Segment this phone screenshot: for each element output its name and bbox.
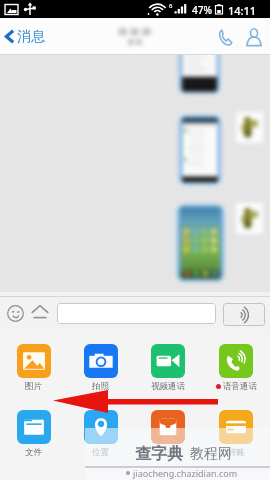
button[interactable]: Emoji — [7, 305, 24, 322]
button[interactable]: 消息 — [0, 27, 53, 46]
staticText: 消息 — [17, 28, 45, 46]
button[interactable]: 转账 — [202, 410, 270, 458]
staticText: jiaocheng.chazidian.com — [133, 467, 238, 479]
button[interactable]: 拍照 — [67, 344, 134, 392]
staticText: 拍照 — [92, 381, 109, 392]
staticText: 14:11 — [228, 3, 257, 18]
button[interactable]: Voice call — [212, 24, 238, 50]
staticText: 红包 — [160, 447, 177, 458]
staticText: 查字典 — [135, 444, 183, 464]
staticText: 6 — [169, 2, 173, 10]
button[interactable]: 红包 — [134, 410, 202, 458]
button[interactable]: 位置 — [67, 410, 134, 458]
staticText: 图片 — [25, 381, 42, 392]
staticText: 教程网 — [190, 445, 232, 463]
button[interactable]: 文件 — [0, 410, 67, 458]
button[interactable]: Contact profile — [241, 24, 267, 50]
staticText: 转账 — [228, 447, 245, 458]
staticText: 位置 — [92, 447, 109, 458]
button[interactable]: 语音通话 — [202, 344, 270, 392]
button[interactable]: Message input — [57, 303, 216, 324]
button[interactable]: Voice message — [223, 303, 265, 326]
staticText: 语音通话 — [223, 381, 257, 392]
staticText: 文件 — [25, 447, 42, 458]
staticText: 47% — [192, 3, 212, 17]
button[interactable]: 图片 — [0, 344, 67, 392]
staticText: 视频通话 — [151, 381, 185, 392]
button[interactable]: Show keyboard — [31, 304, 49, 321]
button[interactable]: 视频通话 — [134, 344, 202, 392]
